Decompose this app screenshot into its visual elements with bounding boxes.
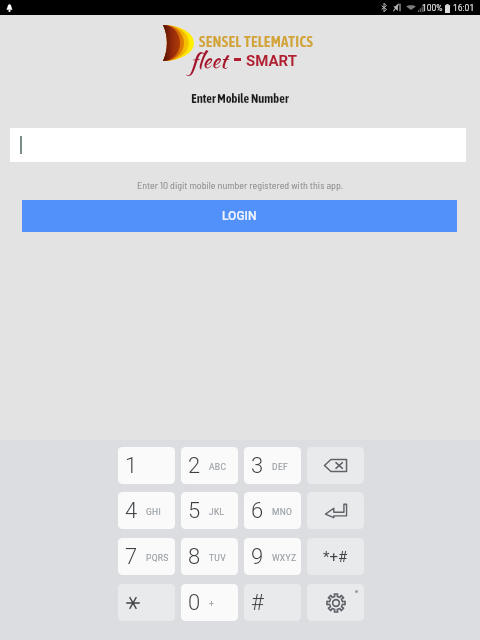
staticText: SENSEL TELEMATICS [199, 33, 314, 50]
staticText: 6 [251, 498, 264, 524]
staticText: MNO [272, 507, 293, 517]
staticText: 7 [125, 544, 138, 570]
button[interactable]: 5 [181, 492, 238, 529]
staticText: 5 [188, 498, 201, 524]
button[interactable]: LOGIN [22, 200, 457, 232]
staticText: LOGIN [222, 209, 257, 223]
button[interactable]: Backspace [307, 447, 364, 484]
staticText: GHI [146, 507, 162, 517]
button[interactable]: *+# [307, 538, 364, 575]
staticText: 16:01 [453, 3, 475, 13]
button[interactable]: 0 [181, 584, 238, 621]
other: Notification [5, 3, 14, 12]
staticText: 3 [251, 453, 264, 479]
button[interactable]: Settings [307, 584, 364, 621]
staticText: 9 [251, 544, 264, 570]
staticText: # [251, 590, 264, 616]
staticText: TUV [209, 553, 226, 563]
staticText: 100% [422, 3, 443, 13]
staticText: Enter Mobile Number [0, 91, 480, 105]
staticText: JKL [209, 507, 225, 517]
staticText: 4 [125, 498, 138, 524]
button[interactable]: Enter [307, 492, 364, 529]
button[interactable]: 8 [181, 538, 238, 575]
other: Enter [325, 504, 347, 518]
other: Backspace [324, 459, 347, 472]
button[interactable]: 7 [118, 538, 175, 575]
staticText: + [209, 599, 215, 609]
button[interactable] [10, 128, 466, 162]
staticText: DEF [272, 462, 289, 472]
staticText: WXYZ [272, 553, 297, 563]
staticText: 1 [125, 453, 138, 479]
button[interactable]: 9 [244, 538, 301, 575]
button[interactable]: Star [118, 584, 175, 621]
staticText: 2 [188, 453, 201, 479]
staticText: SMART [246, 52, 298, 70]
other: Star [126, 596, 140, 610]
staticText: PQRS [146, 553, 169, 563]
button[interactable]: 4 [118, 492, 175, 529]
staticText: ABC [209, 462, 227, 472]
button[interactable]: 2 [181, 447, 238, 484]
staticText: 0 [188, 590, 201, 616]
staticText: fleet [190, 45, 228, 76]
button[interactable]: 1 [118, 447, 175, 484]
button[interactable]: # [244, 584, 301, 621]
button[interactable]: 3 [244, 447, 301, 484]
other: Settings [326, 593, 346, 613]
button[interactable]: 6 [244, 492, 301, 529]
staticText: *+# [323, 548, 348, 566]
staticText: 8 [188, 544, 201, 570]
staticText: Enter 10 digit mobile number registered … [0, 179, 480, 191]
